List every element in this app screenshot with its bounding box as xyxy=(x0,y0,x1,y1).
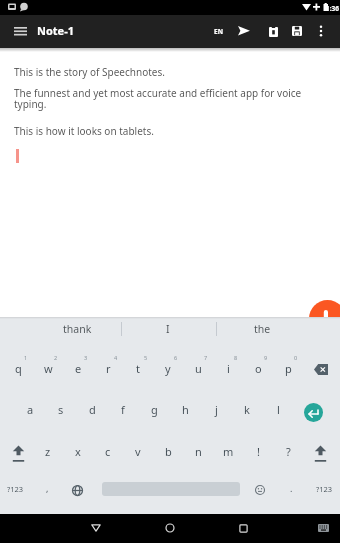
button[interactable] xyxy=(284,22,310,40)
staticText: The funnest and yet most accurate and ef… xyxy=(14,86,302,100)
staticText: i xyxy=(227,361,230,376)
staticText: j xyxy=(215,402,218,417)
button[interactable]: x xyxy=(64,442,92,460)
staticText: e xyxy=(75,361,82,376)
staticText: t xyxy=(136,361,140,376)
button[interactable]: ! xyxy=(246,442,270,460)
button[interactable]: n xyxy=(184,442,212,460)
button[interactable] xyxy=(66,480,88,500)
button[interactable] xyxy=(304,403,323,422)
button[interactable]: r xyxy=(94,359,122,377)
button[interactable]: o xyxy=(244,359,272,377)
staticText: 3 xyxy=(84,354,88,361)
staticText: This is the story of Speechnotes. xyxy=(14,65,165,79)
staticText: typing. xyxy=(14,97,47,111)
button[interactable]: c xyxy=(94,442,122,460)
staticText: ! xyxy=(257,444,260,459)
staticText: y xyxy=(165,361,171,376)
staticText: ?123 xyxy=(316,484,333,494)
staticText: , xyxy=(46,482,49,494)
button[interactable]: i xyxy=(214,359,242,377)
staticText: 1:36 xyxy=(326,4,339,13)
button[interactable] xyxy=(8,21,32,41)
staticText: 1 xyxy=(24,354,28,361)
button[interactable]: . xyxy=(282,480,300,496)
staticText: 5 xyxy=(144,354,148,361)
staticText: o xyxy=(255,361,262,376)
staticText: c xyxy=(105,444,111,459)
button[interactable]: s xyxy=(47,400,75,418)
button[interactable]: , xyxy=(38,480,56,496)
button[interactable] xyxy=(260,22,286,40)
button[interactable] xyxy=(312,519,334,537)
button[interactable]: z xyxy=(34,442,62,460)
staticText: 7 xyxy=(204,354,208,361)
button[interactable] xyxy=(307,359,335,380)
staticText: z xyxy=(45,444,51,459)
staticText: EN xyxy=(214,27,223,36)
button[interactable]: h xyxy=(171,400,199,418)
button[interactable]: EN xyxy=(206,22,230,40)
button[interactable]: u xyxy=(184,359,212,377)
staticText: the xyxy=(254,322,271,336)
button[interactable]: m xyxy=(214,442,242,460)
staticText: w xyxy=(44,361,53,376)
button[interactable]: ? xyxy=(276,442,300,460)
staticText: u xyxy=(195,361,202,376)
button[interactable]: g xyxy=(140,400,168,418)
staticText: 4 xyxy=(114,354,118,361)
button[interactable] xyxy=(231,22,257,40)
button[interactable]: j xyxy=(202,400,230,418)
button[interactable]: y xyxy=(154,359,182,377)
staticText: r xyxy=(106,361,111,376)
button[interactable] xyxy=(84,518,108,538)
staticText: 8 xyxy=(234,354,238,361)
button[interactable]: ?123 xyxy=(311,481,337,497)
staticText: x xyxy=(75,444,81,459)
button[interactable]: e xyxy=(64,359,92,377)
button[interactable] xyxy=(249,480,271,500)
staticText: m xyxy=(223,444,234,459)
button[interactable]: d xyxy=(78,400,106,418)
staticText: 6 xyxy=(174,354,178,361)
button[interactable] xyxy=(311,22,331,40)
button[interactable]: thank xyxy=(42,321,112,337)
staticText: ? xyxy=(286,444,291,459)
staticText: g xyxy=(151,402,158,417)
staticText: a xyxy=(27,402,34,417)
staticText: 2 xyxy=(54,354,58,361)
button[interactable] xyxy=(6,444,30,462)
button[interactable]: l xyxy=(264,400,292,418)
button[interactable]: ?123 xyxy=(2,481,28,497)
button[interactable]: the xyxy=(232,321,292,337)
button[interactable]: v xyxy=(124,442,152,460)
button[interactable]: k xyxy=(233,400,261,418)
staticText: f xyxy=(121,402,125,417)
button[interactable]: q xyxy=(4,359,32,377)
button[interactable] xyxy=(308,444,332,462)
staticText: d xyxy=(89,402,96,417)
staticText: thank xyxy=(63,322,92,336)
staticText: v xyxy=(135,444,141,459)
staticText: s xyxy=(58,402,64,417)
staticText: k xyxy=(244,402,250,417)
staticText: n xyxy=(195,444,202,459)
staticText: h xyxy=(182,402,189,417)
button[interactable]: f xyxy=(109,400,137,418)
button[interactable] xyxy=(309,300,340,337)
button[interactable]: a xyxy=(16,400,44,418)
staticText: q xyxy=(15,361,22,376)
staticText: l xyxy=(277,402,280,417)
staticText: . xyxy=(290,482,293,494)
staticText: p xyxy=(285,361,292,376)
button[interactable] xyxy=(158,518,182,538)
button[interactable]: w xyxy=(34,359,62,377)
button[interactable]: p xyxy=(274,359,302,377)
button[interactable]: b xyxy=(154,442,182,460)
button[interactable]: t xyxy=(124,359,152,377)
button[interactable]: I xyxy=(148,321,188,337)
button[interactable] xyxy=(231,518,255,538)
staticText: This is how it looks on tablets. xyxy=(14,124,154,138)
staticText: 9 xyxy=(264,354,268,361)
